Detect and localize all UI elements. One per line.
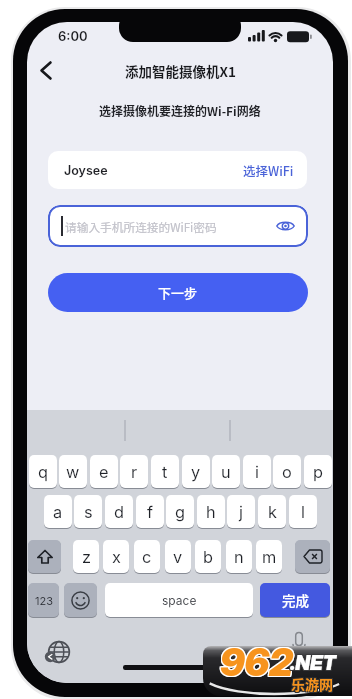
staticText: z [82,547,91,567]
staticText: j [239,502,243,522]
staticText: c [142,547,152,567]
staticText: 962 [219,646,292,685]
button[interactable]: u [212,455,240,488]
staticText: 123 [35,594,53,607]
staticText: u [221,462,231,482]
staticText: 选择WiFi [243,161,294,179]
staticText: l [301,502,305,522]
staticText: 乐游网 [292,673,334,693]
button[interactable]: d [105,495,133,528]
staticText: 962 [220,646,293,686]
button[interactable]: h [197,495,225,528]
staticText: k [268,502,277,522]
staticText: x [112,547,121,567]
button[interactable]: x [103,540,129,573]
button[interactable]: 请输入手机所连接的WiFi密码 [48,205,308,247]
staticText: 乐游网 [291,675,333,695]
staticText: d [114,502,124,522]
button[interactable]: m [256,540,282,573]
staticText: h [206,502,216,522]
button[interactable]: c [134,540,160,573]
button[interactable]: t [151,455,179,488]
staticText: y [191,462,201,482]
staticText: 乐游网 [292,674,334,694]
button[interactable]: q [29,455,57,488]
button[interactable]: l [289,495,317,528]
staticText: 添加智能摄像机X1 [125,61,236,80]
staticText: 选择摄像机要连接的Wi-Fi网络 [99,102,261,119]
staticText: b [203,547,213,567]
button[interactable]: 选择WiFi [243,161,294,179]
button[interactable]: e [90,455,118,488]
button[interactable]: r [120,455,148,488]
button[interactable]: v [165,540,191,573]
button[interactable]: a [44,495,72,528]
staticText: Joysee [64,163,108,178]
staticText: 962 [220,646,293,684]
staticText: 962 [221,646,294,684]
staticText: a [53,502,63,522]
button[interactable]: z [73,540,99,573]
button[interactable]: 下一步 [48,273,308,312]
button[interactable]: f [136,495,164,528]
staticText: space [162,593,197,608]
staticText: s [84,502,93,522]
button[interactable] [276,219,295,233]
staticText: w [66,462,80,482]
staticText: t [162,462,168,482]
staticText: o [282,462,292,482]
staticText: .NET [291,650,337,674]
button[interactable] [295,540,330,573]
staticText: q [38,462,48,482]
staticText: 乐游网 [291,674,333,694]
staticText: 962 [219,646,292,684]
button[interactable]: space [105,583,253,617]
button[interactable]: 123 [28,583,59,617]
staticText: 962 [221,646,294,685]
staticText: 完成 [282,590,309,610]
staticText: 6:00 [58,28,88,44]
staticText: 乐游网 [290,674,332,694]
staticText: .NET [291,652,337,676]
staticText: .NET [289,650,335,674]
staticText: 乐游网 [290,675,332,695]
staticText: .NET [290,650,336,674]
button[interactable]: k [258,495,286,528]
staticText: 962 [220,646,293,685]
button[interactable]: g [166,495,194,528]
staticText: 乐游网 [291,673,333,693]
button[interactable]: b [195,540,221,573]
button[interactable]: n [226,540,252,573]
button[interactable]: Joysee [48,151,307,189]
staticText: 962 [219,646,292,686]
staticText: 乐游网 [292,675,334,695]
button[interactable] [33,56,59,86]
button[interactable]: p [304,455,332,488]
staticText: .NET [289,651,335,675]
button[interactable]: j [227,495,255,528]
staticText: 请输入手机所连接的WiFi密码 [65,218,217,235]
button[interactable]: s [74,495,102,528]
button[interactable]: 完成 [260,583,330,617]
staticText: r [131,462,138,482]
button[interactable]: i [243,455,271,488]
button[interactable] [28,540,61,573]
staticText: .NET [290,651,336,675]
button[interactable] [64,583,97,617]
staticText: .NET [289,652,335,676]
staticText: .NET [291,651,337,675]
staticText: 乐游网 [290,673,332,693]
staticText: f [147,502,154,522]
button[interactable]: w [59,455,87,488]
staticText: i [255,462,259,482]
staticText: n [234,547,244,567]
staticText: .NET [290,652,336,676]
staticText: 下一步 [158,283,198,302]
staticText: 962 [221,646,294,686]
staticText: m [262,547,277,567]
staticText: e [99,462,109,482]
button[interactable]: y [182,455,210,488]
button[interactable]: o [273,455,301,488]
staticText: g [175,502,185,522]
staticText: v [173,547,183,567]
